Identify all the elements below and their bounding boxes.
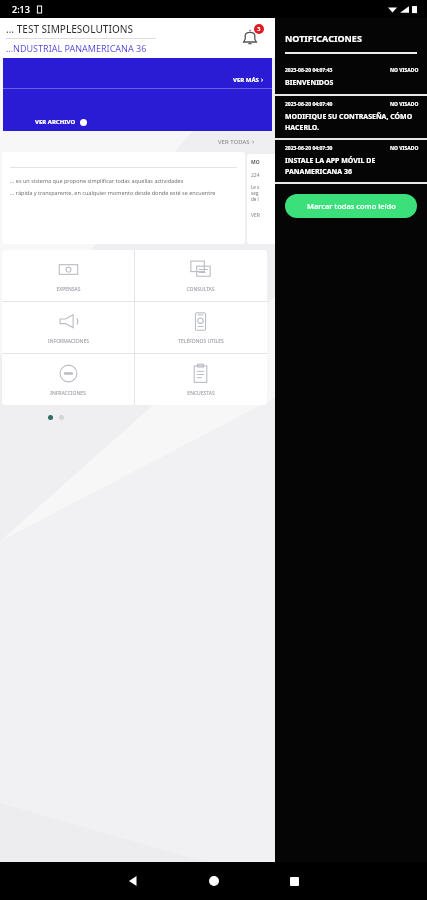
staticText: › [252, 137, 255, 147]
button[interactable]: TELÉFONOS ÚTILES [134, 302, 267, 353]
button[interactable]: 2023-06-20 04:07:43 [275, 62, 427, 94]
staticText: VER MÁS [233, 76, 259, 84]
staticText: … es un sistema que propone simplificar … [10, 177, 184, 184]
staticText: seg [251, 190, 259, 196]
staticText: MODIFIQUE SU CONTRASEÑA, CÓMO HACERLO. [285, 112, 419, 132]
button[interactable]: … es un sistema que propone simplificar … [2, 152, 245, 244]
staticText: CONSULTAS [186, 286, 215, 293]
button[interactable]: ENCUESTAS [134, 354, 267, 405]
staticText: … TEST SIMPLESOLUTIONS [6, 22, 134, 36]
staticText: 2:13 [12, 3, 30, 15]
staticText: EXPENSAS [56, 286, 81, 293]
staticText: … rápida y transparente, en cualquier mo… [10, 189, 216, 196]
staticText: Marcar todas como leído [307, 201, 396, 211]
button[interactable]: Notificaciones [235, 23, 265, 53]
staticText: VER ARCHIVO [35, 118, 76, 126]
staticText: VER TODAS [218, 138, 250, 146]
staticText: …NDUSTRIAL PANAMERICANA 36 [6, 42, 147, 54]
staticText: NOTIFICACIONES [285, 32, 362, 44]
staticText: 224 [251, 172, 260, 179]
button[interactable]: 2023-06-20 04:07:40 [275, 96, 427, 138]
staticText: 2023-06-20 04:07:30 [285, 145, 333, 152]
button[interactable]: INFORMACIONES [2, 302, 134, 353]
staticText: INFRACCIONES [50, 390, 86, 397]
button[interactable]: Recientes [274, 862, 314, 900]
staticText: INSTALE LA APP MÓVIL DE PANAMERICANA 36 [285, 156, 419, 176]
button[interactable]: VER TODAS [216, 135, 257, 149]
staticText: TELÉFONOS ÚTILES [178, 338, 224, 345]
button[interactable]: VER ARCHIVO [3, 89, 272, 131]
button[interactable]: MO [247, 154, 275, 244]
staticText: NO VISADO [390, 145, 419, 152]
staticText: NO VISADO [390, 67, 419, 74]
staticText: 3 [257, 25, 261, 33]
staticText: Le s [251, 184, 260, 190]
staticText: BIENVENIDOS [285, 78, 334, 88]
staticText: ENCUESTAS [187, 390, 215, 397]
button[interactable]: Marcar todas como leído [285, 194, 417, 218]
button[interactable]: Atrás [114, 862, 154, 900]
button[interactable]: Página 1 [48, 415, 53, 420]
staticText: MO [251, 159, 260, 166]
staticText: INFORMACIONES [48, 338, 89, 345]
button[interactable]: Inicio [194, 862, 234, 900]
staticText: 2023-06-20 04:07:43 [285, 67, 333, 74]
button[interactable]: 2023-06-20 04:07:30 [275, 140, 427, 182]
button[interactable]: EXPENSAS [2, 250, 134, 301]
staticText: 2023-06-20 04:07:40 [285, 101, 333, 108]
staticText: de l [251, 196, 259, 202]
staticText: NO VISADO [390, 101, 419, 108]
button[interactable]: VER MÁS [3, 58, 272, 88]
staticText: VER [251, 212, 260, 219]
staticText: › [261, 75, 264, 85]
button[interactable]: Página 2 [59, 415, 64, 420]
button[interactable]: INFRACCIONES [2, 354, 134, 405]
button[interactable]: CONSULTAS [134, 250, 267, 301]
